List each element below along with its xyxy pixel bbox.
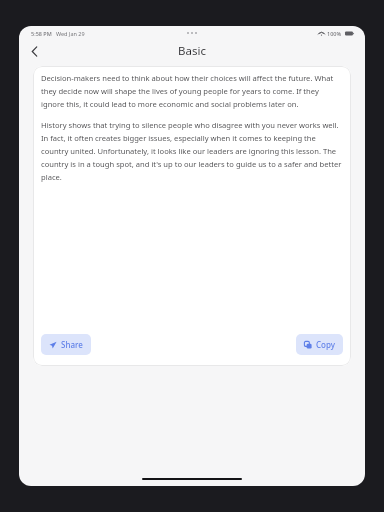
staticText: Share xyxy=(61,339,83,350)
staticText: 100% xyxy=(327,30,342,37)
button[interactable]: Share xyxy=(41,334,91,355)
staticText: 5:58 PM xyxy=(31,30,52,37)
staticText: Wed Jan 29 xyxy=(56,30,85,37)
button[interactable]: Back xyxy=(25,42,43,60)
staticText: History shows that trying to silence peo… xyxy=(41,120,343,182)
staticText: Basic xyxy=(178,43,206,59)
staticText: Copy xyxy=(316,339,335,350)
staticText: Decision-makers need to think about how … xyxy=(41,73,343,109)
button[interactable]: Copy xyxy=(296,334,343,355)
